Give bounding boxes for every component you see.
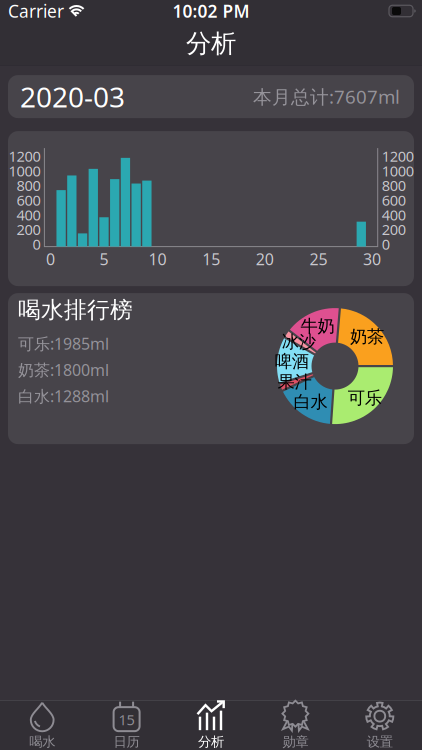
staticText: 10:02 PM (172, 0, 249, 22)
staticText: 2020-03 (20, 78, 125, 115)
staticText: 白水:1288ml (18, 385, 109, 407)
staticText: 600 (16, 190, 40, 210)
staticText: 1200 (382, 146, 414, 166)
staticText: 分析 (198, 734, 224, 750)
staticText: 日历 (114, 734, 140, 750)
staticText: 1200 (8, 146, 40, 166)
staticText: 5 (99, 248, 108, 270)
staticText: 200 (382, 220, 406, 239)
staticText: 800 (382, 176, 406, 195)
staticText: 400 (16, 205, 40, 224)
staticText: 奶茶 (350, 326, 384, 347)
staticText: 设置 (367, 734, 393, 750)
staticText: 15 (119, 710, 135, 729)
staticText: 喝水排行榜 (18, 296, 133, 324)
button[interactable]: 分析 (169, 701, 253, 750)
button[interactable]: 喝水 (0, 701, 84, 750)
staticText: 白水 (293, 391, 327, 413)
staticText: 啤酒 (275, 351, 309, 372)
staticText: 可乐 (348, 387, 382, 408)
staticText: 15 (202, 248, 220, 270)
staticText: 20 (256, 248, 274, 270)
staticText: 勋章 (282, 734, 308, 750)
staticText: 30 (363, 248, 381, 270)
staticText: 冰沙 (282, 331, 316, 353)
staticText: 本月总计:7607ml (253, 84, 400, 109)
staticText: 800 (16, 176, 40, 195)
staticText: 600 (382, 190, 406, 210)
staticText: 400 (382, 205, 406, 224)
staticText: 分析 (186, 28, 236, 59)
staticText: 喝水 (29, 734, 55, 750)
staticText: 0 (382, 234, 390, 254)
staticText: 牛奶 (300, 316, 334, 337)
staticText: 可乐:1985ml (18, 333, 109, 354)
staticText: 0 (46, 248, 55, 270)
staticText: 奶茶:1800ml (18, 359, 109, 380)
button[interactable]: 设置 (338, 701, 422, 750)
button[interactable]: 15 (84, 701, 169, 750)
staticText: 1000 (382, 161, 414, 180)
staticText: 0 (32, 234, 40, 254)
staticText: 10 (149, 248, 167, 270)
staticText: 1000 (8, 161, 40, 180)
staticText: 果汁 (277, 371, 311, 393)
staticText: 25 (309, 248, 327, 270)
button[interactable]: 勋章 (253, 701, 338, 750)
staticText: Carrier (8, 0, 64, 22)
staticText: 200 (16, 220, 40, 239)
